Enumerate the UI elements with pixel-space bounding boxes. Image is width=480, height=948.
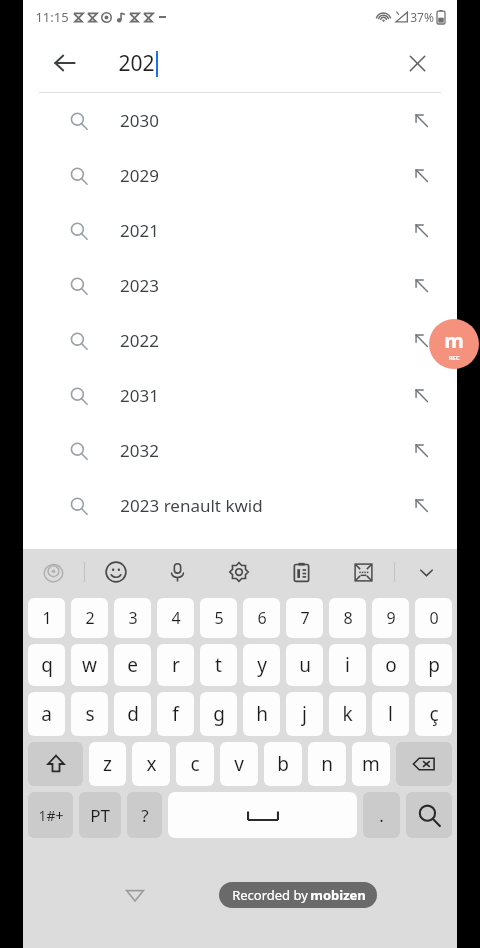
staticText: 7 <box>300 607 310 629</box>
button[interactable]: ? <box>127 792 162 838</box>
staticText: f <box>172 701 179 727</box>
button[interactable]: Search <box>406 792 452 838</box>
staticText: o <box>385 652 397 678</box>
button[interactable]: j <box>286 692 323 736</box>
button[interactable]: u <box>286 644 323 686</box>
button[interactable]: 6 <box>243 598 280 638</box>
staticText: 2032 <box>120 439 159 462</box>
button[interactable]: 4 <box>157 598 194 638</box>
button[interactable]: Settings <box>208 549 270 595</box>
staticText: 2 <box>85 607 95 629</box>
staticText: m <box>444 327 464 354</box>
button[interactable]: y <box>243 644 280 686</box>
staticText: 2023 <box>120 274 159 297</box>
button[interactable]: h <box>243 692 280 736</box>
button[interactable]: Clipboard <box>270 549 332 595</box>
staticText: 1 <box>42 607 52 629</box>
button[interactable]: 2 <box>71 598 108 638</box>
staticText: p <box>428 652 440 678</box>
staticText: s <box>85 701 95 727</box>
button[interactable]: v <box>220 742 258 786</box>
staticText: mobizen <box>310 886 366 904</box>
staticText: 0 <box>429 607 439 629</box>
button[interactable]: 9 <box>372 598 409 638</box>
staticText: w <box>82 652 97 678</box>
staticText: m <box>362 751 380 777</box>
button[interactable]: i <box>329 644 366 686</box>
button[interactable]: Hide keyboard <box>115 875 155 915</box>
staticText: 5 <box>214 607 224 629</box>
staticText: r <box>172 652 180 678</box>
button[interactable]: PT <box>79 792 121 838</box>
button[interactable]: r <box>157 644 194 686</box>
staticText: k <box>342 701 353 727</box>
button[interactable]: Resize keyboard <box>332 549 394 595</box>
button[interactable]: n <box>308 742 346 786</box>
staticText: . <box>379 804 384 827</box>
button[interactable]: a <box>28 692 65 736</box>
button[interactable]: k <box>329 692 366 736</box>
button[interactable]: o <box>372 644 409 686</box>
button[interactable]: Backspace <box>396 742 452 786</box>
staticText: 4 <box>171 607 181 629</box>
button[interactable]: 2021 <box>23 203 457 258</box>
button[interactable]: t <box>200 644 237 686</box>
button[interactable]: d <box>114 692 151 736</box>
button[interactable]: x <box>132 742 170 786</box>
button[interactable]: 5 <box>200 598 237 638</box>
button[interactable]: 2029 <box>23 148 457 203</box>
button[interactable]: 1#+ <box>28 792 73 838</box>
button[interactable]: 3 <box>114 598 151 638</box>
button[interactable]: Collapse <box>395 549 457 595</box>
button[interactable]: Space <box>168 792 357 838</box>
button[interactable]: . <box>363 792 400 838</box>
button[interactable]: 1 <box>28 598 65 638</box>
button[interactable]: Clear <box>395 41 439 85</box>
staticText: a <box>41 701 52 727</box>
button[interactable]: f <box>157 692 194 736</box>
staticText: 8 <box>343 607 353 629</box>
button[interactable]: 2023 renault kwid <box>23 478 457 533</box>
button[interactable]: 8 <box>329 598 366 638</box>
button[interactable]: Screen recorder <box>429 319 479 369</box>
button[interactable]: 2031 <box>23 368 457 423</box>
button[interactable]: 0 <box>415 598 452 638</box>
staticText: 2022 <box>120 329 159 352</box>
staticText: i <box>345 652 350 678</box>
button[interactable]: p <box>415 644 452 686</box>
button[interactable]: c <box>176 742 214 786</box>
button[interactable]: z <box>89 742 126 786</box>
button[interactable]: e <box>114 644 151 686</box>
staticText: 2023 renault kwid <box>120 494 263 517</box>
staticText: 202 <box>118 49 155 78</box>
button[interactable]: 2022 <box>23 313 457 368</box>
staticText: 37% <box>410 9 434 25</box>
button[interactable]: s <box>71 692 108 736</box>
button[interactable]: g <box>200 692 237 736</box>
button[interactable]: ç <box>415 692 452 736</box>
button[interactable]: m <box>352 742 390 786</box>
staticText: x <box>146 751 157 777</box>
staticText: ç <box>429 701 439 727</box>
button[interactable]: Translate <box>23 549 84 595</box>
button[interactable]: Voice input <box>146 549 208 595</box>
staticText: REC <box>448 354 460 362</box>
button[interactable]: w <box>71 644 108 686</box>
button[interactable]: b <box>264 742 302 786</box>
button[interactable]: l <box>372 692 409 736</box>
button[interactable]: q <box>28 644 65 686</box>
button[interactable]: Emoji <box>85 549 146 595</box>
button[interactable]: 2030 <box>23 93 457 148</box>
staticText: ? <box>141 804 149 827</box>
button[interactable]: 2023 <box>23 258 457 313</box>
button[interactable]: Shift <box>28 742 83 786</box>
staticText: 2021 <box>120 219 159 242</box>
staticText: c <box>190 751 200 777</box>
staticText: l <box>388 701 393 727</box>
button[interactable]: Back <box>43 41 87 85</box>
staticText: h <box>256 701 268 727</box>
staticText: t <box>215 652 222 678</box>
button[interactable]: 7 <box>286 598 323 638</box>
staticText: 1#+ <box>38 806 64 825</box>
button[interactable]: 2032 <box>23 423 457 478</box>
